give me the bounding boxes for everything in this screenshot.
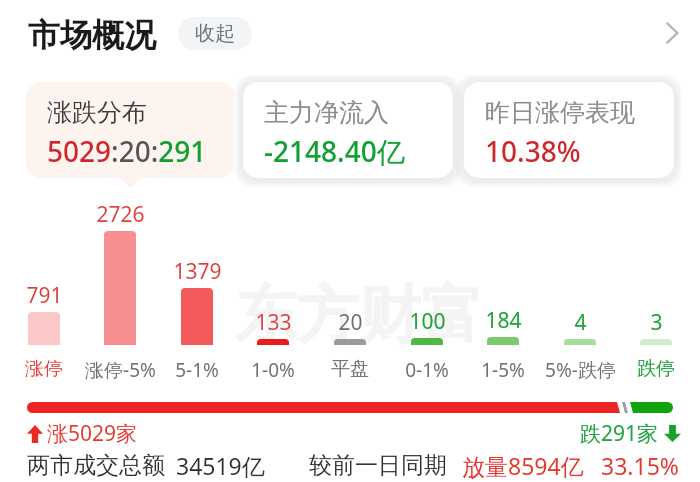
button[interactable]: 主力净流入: [243, 82, 453, 178]
staticText: 0-1%: [405, 357, 449, 383]
staticText: 1-5%: [481, 357, 525, 383]
button[interactable]: Expand: [654, 15, 690, 51]
staticText: 跌291家: [580, 419, 659, 448]
staticText: 20: [338, 308, 363, 337]
staticText: 昨日涨停表现: [485, 97, 635, 128]
button[interactable]: 昨日涨停表现: [464, 82, 674, 178]
staticText: 34519亿: [176, 450, 265, 481]
staticText: 5029:20:291: [47, 132, 207, 170]
staticText: 1379: [173, 257, 222, 286]
staticText: 涨跌分布: [47, 97, 147, 128]
button[interactable]: 市场概况: [28, 15, 156, 55]
staticText: 涨5029家: [47, 419, 138, 448]
staticText: 主力净流入: [264, 97, 389, 128]
button[interactable]: 收起: [178, 17, 252, 50]
button[interactable]: 跌291家: [580, 419, 681, 448]
button[interactable]: 涨跌分布: [26, 82, 235, 178]
staticText: 5%-跌停: [545, 357, 616, 383]
staticText: 4: [574, 308, 587, 337]
staticText: 100: [409, 307, 446, 336]
staticText: 涨停-5%: [85, 357, 156, 383]
staticText: 两市成交总额: [27, 451, 165, 480]
staticText: 涨停: [25, 357, 63, 381]
staticText: 较前一日同期: [309, 451, 447, 480]
staticText: 跌停: [637, 357, 675, 381]
staticText: 放量8594亿: [462, 450, 584, 481]
staticText: 791: [26, 281, 63, 310]
staticText: 133: [255, 308, 292, 337]
staticText: 5-1%: [175, 357, 219, 383]
staticText: 2726: [96, 200, 145, 229]
staticText: 收起: [195, 21, 235, 46]
staticText: 平盘: [331, 357, 369, 381]
staticText: 1-0%: [251, 357, 295, 383]
button[interactable]: 涨5029家: [27, 419, 138, 448]
staticText: 33.15%: [601, 450, 679, 481]
staticText: -2148.40亿: [264, 132, 405, 170]
staticText: 3: [650, 308, 663, 337]
staticText: 东方财富: [235, 276, 483, 354]
staticText: 10.38%: [485, 132, 581, 170]
staticText: 市场概况: [28, 15, 156, 55]
staticText: 184: [485, 306, 522, 335]
